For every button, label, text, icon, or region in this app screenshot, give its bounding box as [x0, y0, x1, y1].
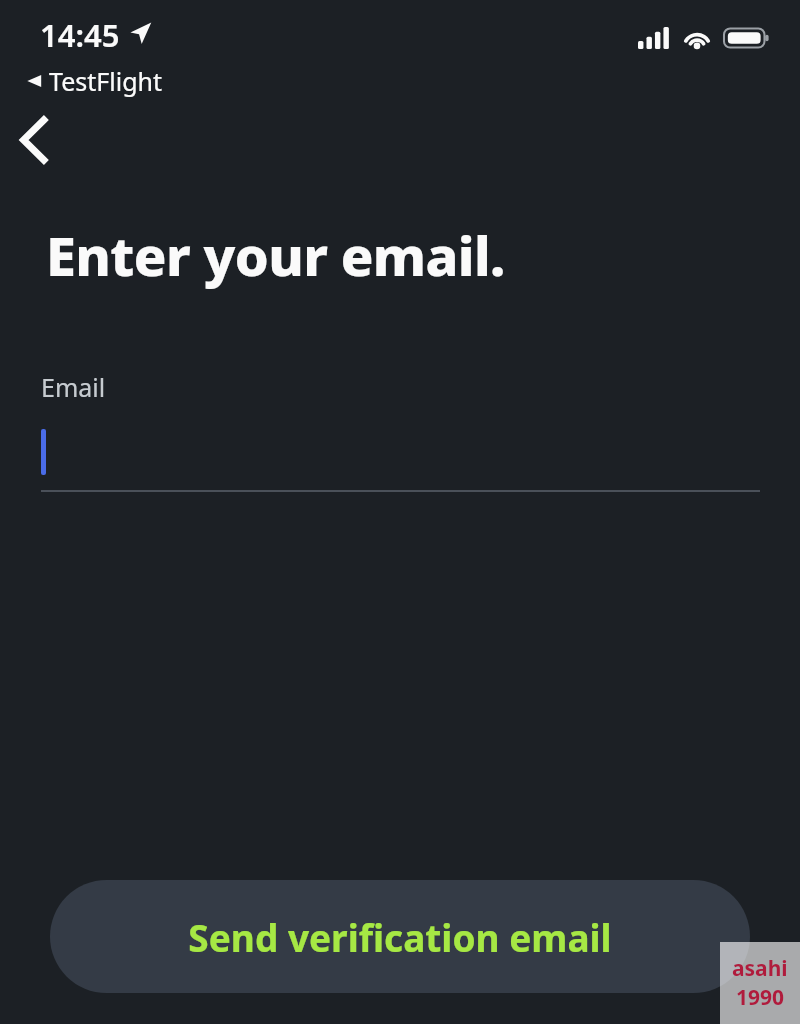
- staticText: asahi: [732, 954, 788, 983]
- staticText: 1990: [736, 983, 785, 1012]
- button[interactable]: Back: [6, 112, 62, 168]
- button[interactable]: Send verification email: [50, 880, 750, 993]
- button[interactable]: TestFlight: [22, 62, 166, 100]
- staticText: Enter your email.: [46, 218, 505, 292]
- staticText: TestFlight: [49, 64, 162, 98]
- staticText: 14:45: [40, 14, 120, 56]
- staticText: Send verification email: [188, 912, 612, 962]
- button[interactable]: Email: [0, 370, 800, 492]
- staticText: Email: [41, 370, 106, 404]
